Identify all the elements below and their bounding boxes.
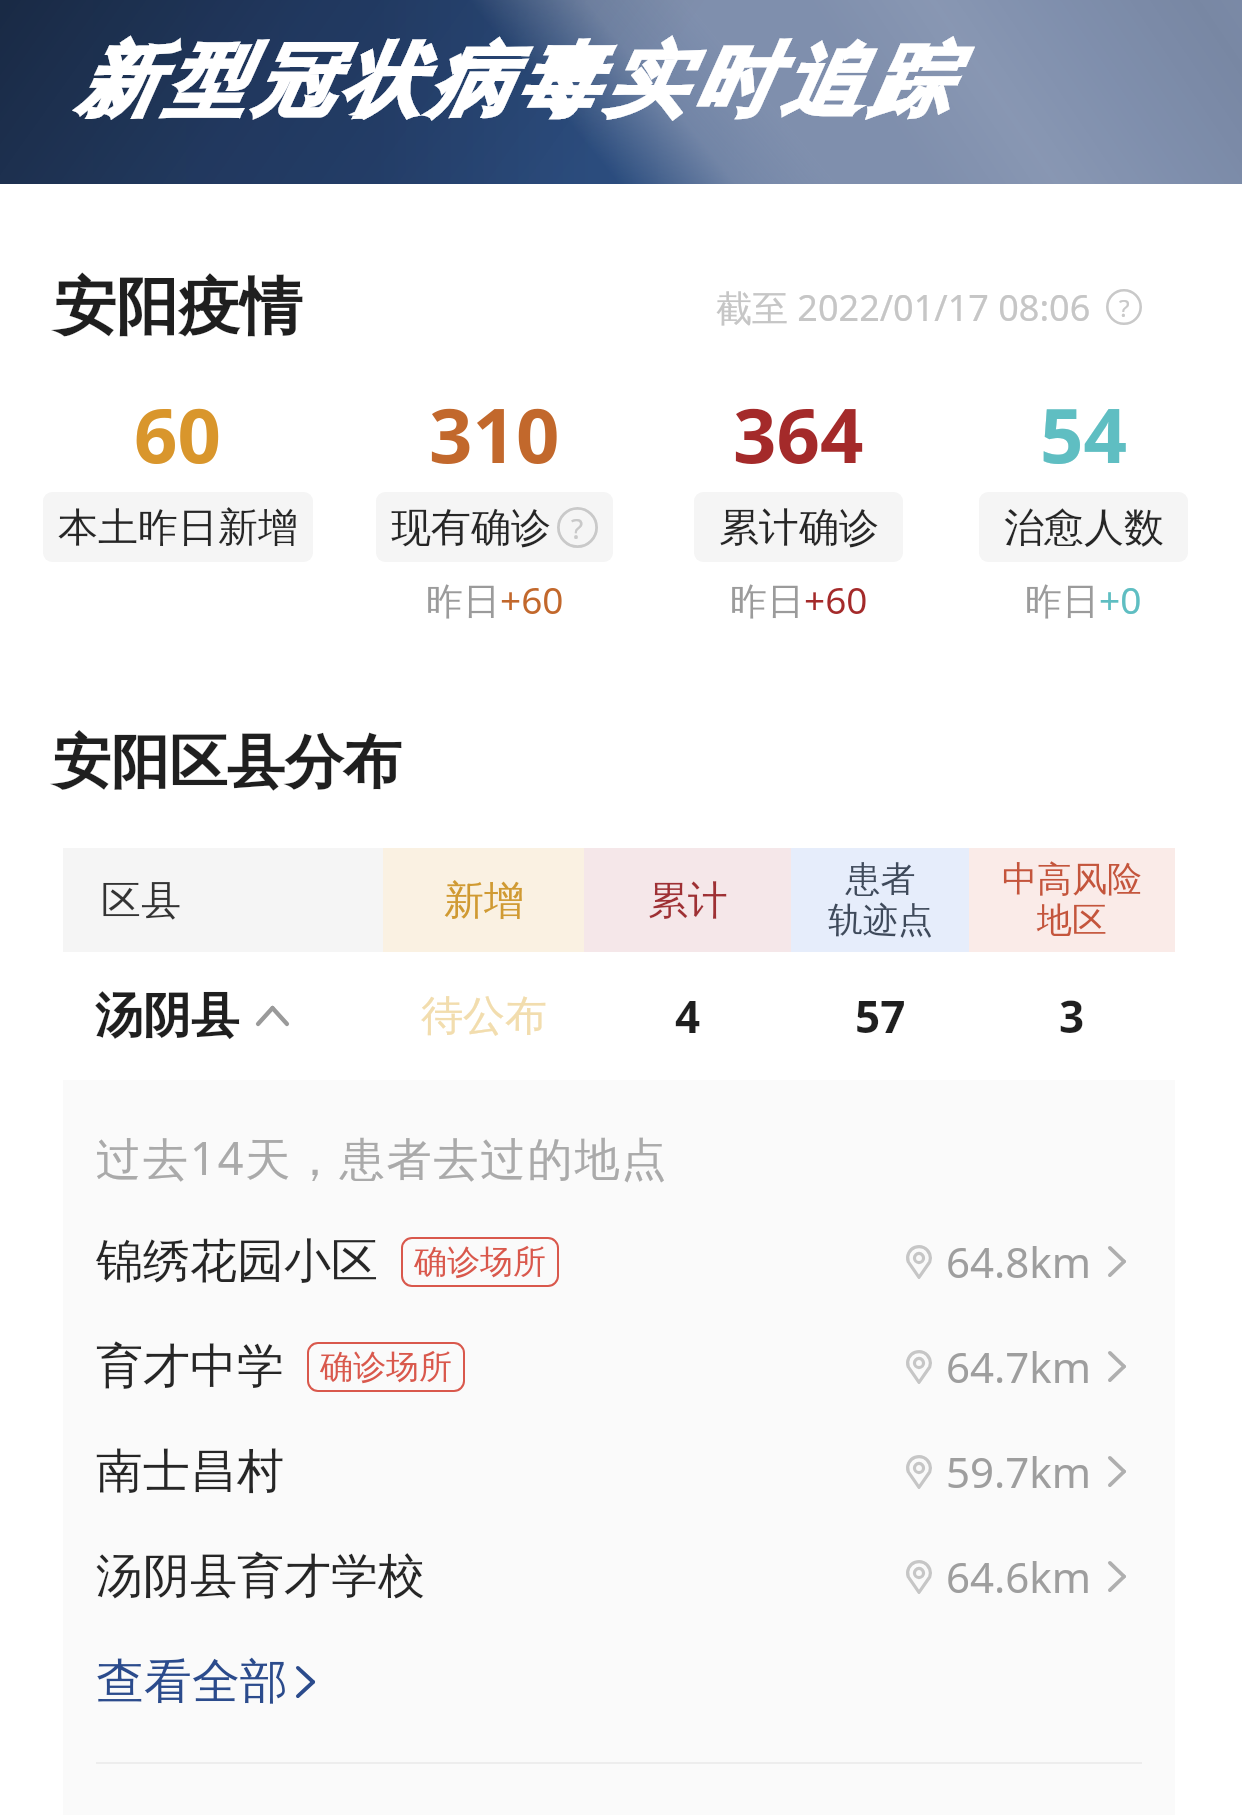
staticText: 确诊场所 (320, 1346, 452, 1388)
staticText: 364 (733, 382, 864, 486)
other: Collapse (256, 1006, 289, 1026)
button[interactable]: 310 (355, 382, 634, 625)
staticText: ? (1119, 291, 1130, 324)
staticText: 新增 (444, 875, 524, 925)
button[interactable]: 育才中学 (63, 1314, 1175, 1419)
button[interactable]: 汤阴县 (63, 952, 1175, 1080)
staticText: 4 (675, 986, 701, 1046)
staticText: 昨日+60 (730, 574, 868, 625)
staticText: 现有确诊 (391, 502, 551, 552)
staticText: 59.7km (946, 1443, 1092, 1500)
staticText: 64.7km (946, 1338, 1092, 1395)
button[interactable]: 查看全部 (63, 1629, 1175, 1734)
staticText: 查看全部 (96, 1652, 288, 1712)
staticText: 累计 (648, 875, 728, 925)
staticText: 治愈人数 (1004, 502, 1164, 552)
staticText: 区县 (101, 875, 181, 925)
button[interactable]: 锦绣花园小区 (63, 1209, 1175, 1314)
staticText: 57 (855, 986, 906, 1046)
staticText: 安阳疫情 (54, 268, 302, 346)
staticText: 待公布 (421, 990, 547, 1043)
button[interactable]: 54 (963, 382, 1203, 625)
staticText: 确诊场所 (414, 1241, 546, 1283)
staticText: 中高风险 地区 (1002, 857, 1142, 943)
staticText: 本土昨日新增 (58, 502, 298, 552)
button[interactable]: 60 (0, 382, 355, 562)
staticText: 60 (134, 382, 221, 486)
staticText: 新型冠状病毒实时追踪 (72, 32, 952, 132)
staticText: 汤阴县育才学校 (96, 1547, 425, 1606)
staticText: 昨日+60 (426, 574, 564, 625)
staticText: 310 (429, 382, 560, 486)
staticText: 3 (1059, 986, 1085, 1046)
staticText: 南士昌村 (96, 1442, 284, 1501)
staticText: 截至 2022/01/17 08:06 (716, 283, 1091, 332)
button[interactable]: 南士昌村 (63, 1419, 1175, 1524)
staticText: 安阳区县分布 (53, 726, 401, 799)
button[interactable]: More information (557, 507, 598, 548)
button[interactable]: 汤阴县育才学校 (63, 1524, 1175, 1629)
staticText: 累计确诊 (719, 502, 879, 552)
staticText: 锦绣花园小区 (96, 1232, 378, 1291)
staticText: 昨日+0 (1025, 574, 1142, 625)
button[interactable]: More information (1106, 289, 1142, 325)
staticText: 患者 轨迹点 (828, 857, 933, 943)
button[interactable]: 364 (634, 382, 963, 625)
staticText: 育才中学 (96, 1337, 284, 1396)
staticText: 64.8km (946, 1233, 1092, 1290)
staticText: 过去14天，患者去过的地点 (96, 1127, 669, 1188)
staticText: 汤阴县 (95, 986, 239, 1046)
staticText: 54 (1040, 382, 1127, 486)
staticText: ? (571, 509, 584, 547)
staticText: 64.6km (946, 1548, 1092, 1605)
